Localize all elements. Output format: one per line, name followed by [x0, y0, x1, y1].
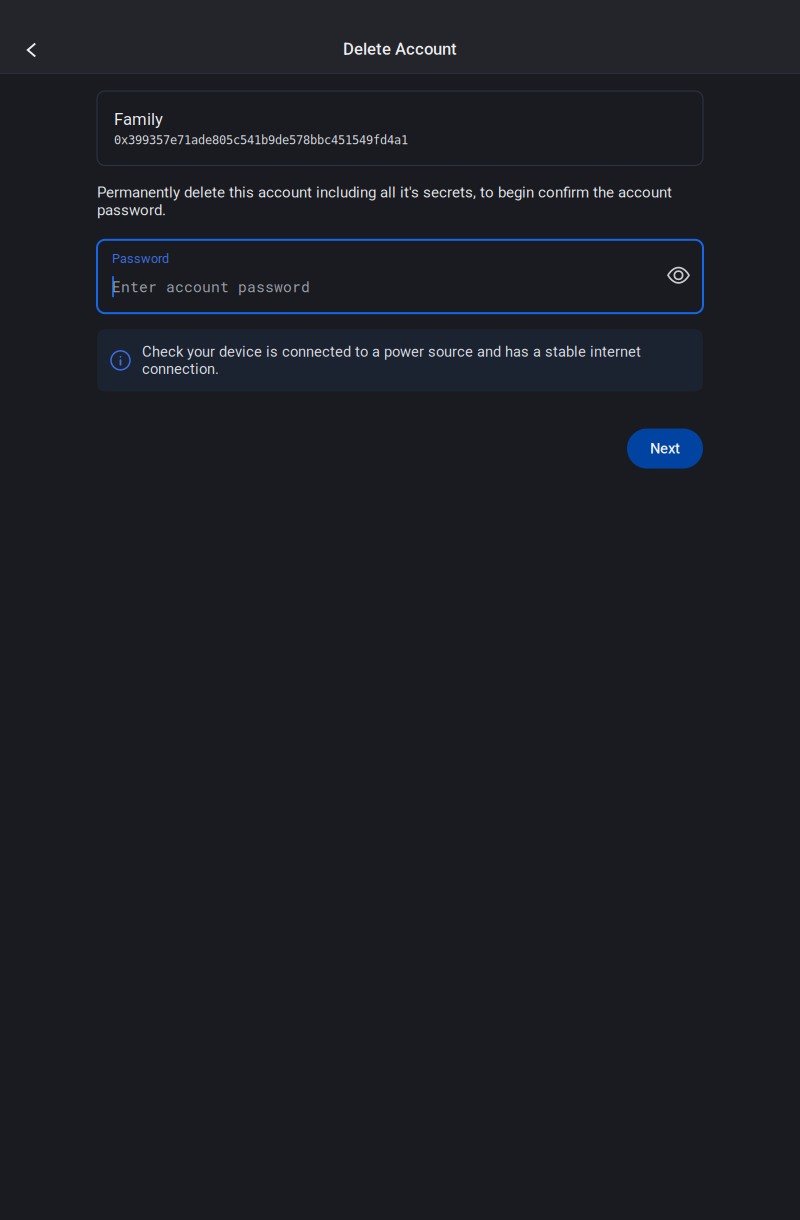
- button[interactable]: Show password: [651, 252, 698, 297]
- staticText: Password: [112, 251, 169, 266]
- button[interactable]: Next: [627, 428, 703, 468]
- staticText: Enter account password: [112, 277, 310, 296]
- staticText: Permanently delete this account includin…: [97, 183, 672, 219]
- staticText: Check your device is connected to a powe…: [142, 343, 641, 378]
- staticText: Next: [650, 440, 680, 457]
- staticText: 0x399357e71ade805c541b9de578bbc451549fd4…: [114, 133, 408, 147]
- button[interactable]: Password: [112, 251, 651, 297]
- staticText: Delete Account: [343, 39, 457, 59]
- button[interactable]: Back: [9, 27, 53, 71]
- staticText: Family: [114, 109, 163, 129]
